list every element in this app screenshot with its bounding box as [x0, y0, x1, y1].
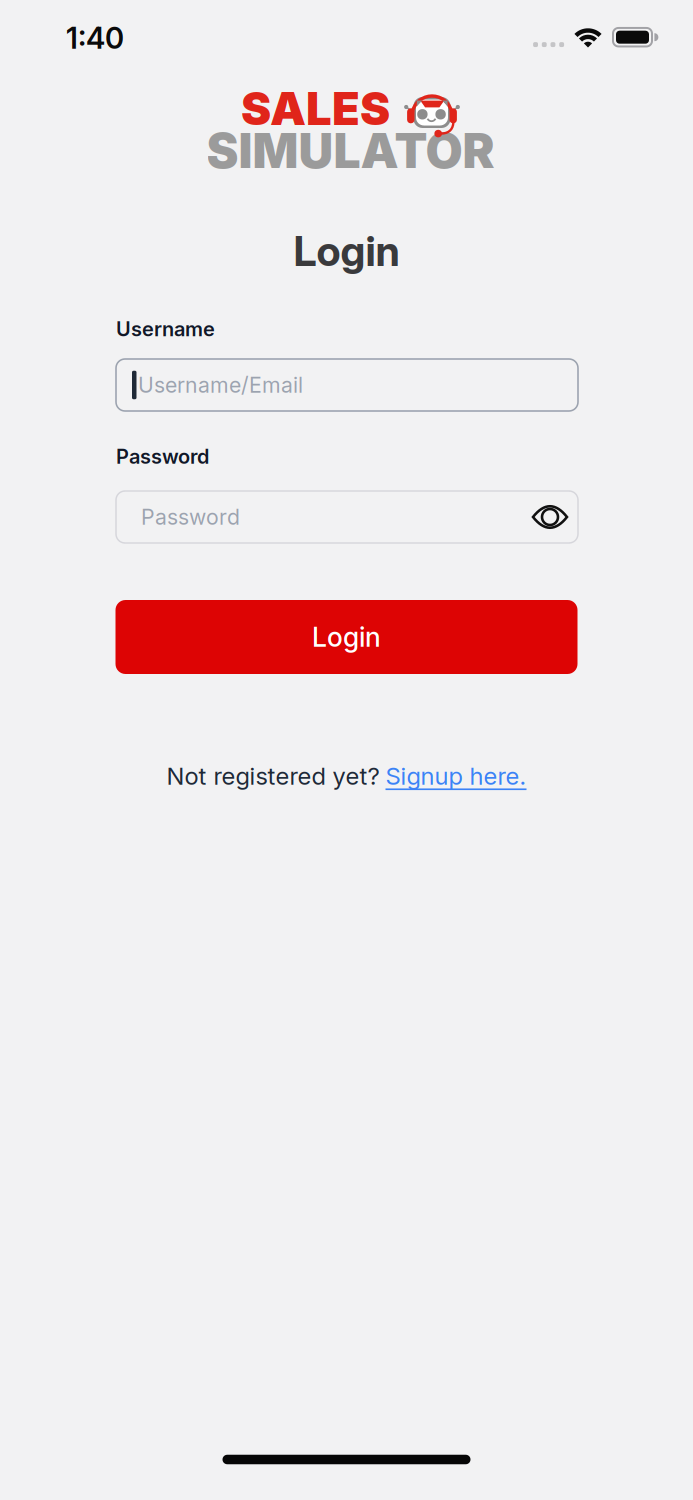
staticText: 1:40	[66, 21, 124, 55]
staticText: SALES	[241, 82, 390, 135]
staticText: SIMULATOR	[206, 122, 494, 179]
button[interactable]: Signup here.	[385, 762, 526, 790]
button[interactable]: Login	[115, 600, 577, 674]
staticText: Password	[116, 445, 209, 468]
staticText: Login	[293, 227, 399, 275]
staticText: Username/Email	[138, 372, 303, 398]
staticText: Login	[312, 621, 381, 653]
button[interactable]: Username/Email	[116, 359, 578, 411]
button[interactable]: Show password	[530, 499, 570, 535]
staticText: Password	[141, 504, 240, 530]
staticText: Username	[116, 317, 215, 341]
staticText: Not registered yet?	[166, 762, 379, 790]
staticText: Signup here.	[385, 762, 526, 790]
button[interactable]: Password	[116, 491, 578, 543]
